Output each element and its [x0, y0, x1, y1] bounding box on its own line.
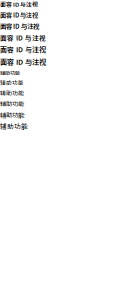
staticText: 面容 ID 与注视	[0, 0, 38, 8]
staticText: 辅助功能	[0, 110, 24, 119]
staticText: 辅助功能	[0, 121, 28, 131]
staticText: 辅助功能	[0, 78, 24, 87]
staticText: 面容 ID 与注视	[0, 56, 46, 67]
staticText: 辅助功能	[0, 89, 24, 97]
staticText: 面容 ID 与注视	[0, 33, 46, 42]
staticText: 面容 ID 与注视	[0, 21, 39, 31]
staticText: 面容 ID 与注视	[0, 10, 38, 19]
staticText: 辅助功能	[0, 69, 20, 76]
staticText: 辅助功能	[0, 99, 24, 108]
staticText: 面容 ID 与注视	[0, 44, 46, 54]
